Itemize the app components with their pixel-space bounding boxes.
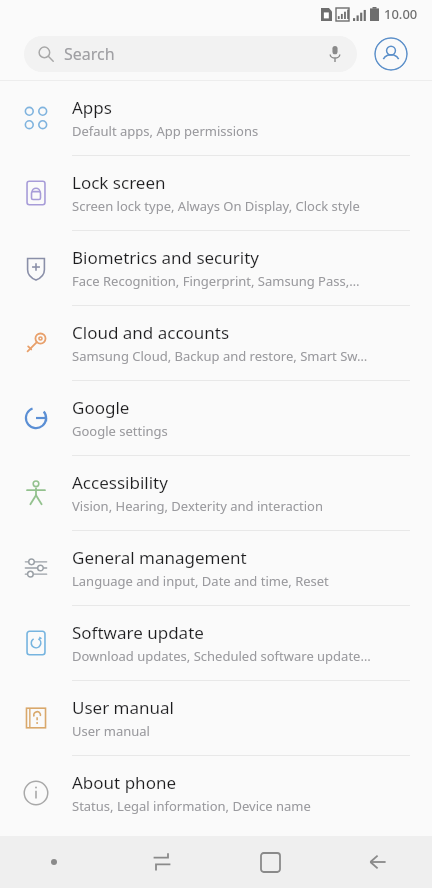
staticText: User manual <box>72 722 150 740</box>
staticText: Default apps, App permissions <box>72 122 259 140</box>
staticText: Search <box>64 43 115 65</box>
staticText: Language and input, Date and time, Reset <box>72 572 329 590</box>
staticText: Samsung Cloud, Backup and restore, Smart… <box>72 347 368 365</box>
button[interactable]: Accessibility <box>0 456 432 530</box>
button[interactable]: Indicator <box>0 836 108 888</box>
staticText: Accessibility <box>72 471 168 494</box>
staticText: Apps <box>72 96 112 119</box>
button[interactable]: General management <box>0 531 432 605</box>
staticText: Cloud and accounts <box>72 321 230 344</box>
button[interactable]: Back <box>324 836 432 888</box>
button[interactable]: Google <box>0 381 432 455</box>
staticText: Face Recognition, Fingerprint, Samsung P… <box>72 272 360 290</box>
staticText: Download updates, Scheduled software upd… <box>72 647 371 665</box>
staticText: User manual <box>72 696 174 719</box>
staticText: Software update <box>72 621 204 644</box>
button[interactable]: Lock screen <box>0 156 432 230</box>
staticText: Screen lock type, Always On Display, Clo… <box>72 197 360 215</box>
staticText: Status, Legal information, Device name <box>72 797 311 815</box>
staticText: 10.00 <box>384 5 418 23</box>
button[interactable]: Apps <box>0 81 432 155</box>
button[interactable]: About phone <box>0 756 432 830</box>
button[interactable]: User manual <box>0 681 432 755</box>
staticText: Google settings <box>72 422 168 440</box>
button[interactable]: Search <box>24 36 357 72</box>
staticText: Vision, Hearing, Dexterity and interacti… <box>72 497 323 515</box>
staticText: General management <box>72 546 247 569</box>
staticText: About phone <box>72 771 177 794</box>
button[interactable]: Software update <box>0 606 432 680</box>
other: Voice search <box>327 46 343 62</box>
button[interactable]: Home <box>216 836 324 888</box>
staticText: Biometrics and security <box>72 246 259 269</box>
button[interactable]: Biometrics and security <box>0 231 432 305</box>
button[interactable]: Cloud and accounts <box>0 306 432 380</box>
staticText: Google <box>72 396 130 419</box>
button[interactable]: Account <box>374 37 408 71</box>
staticText: Lock screen <box>72 171 166 194</box>
button[interactable]: Recents <box>108 836 216 888</box>
